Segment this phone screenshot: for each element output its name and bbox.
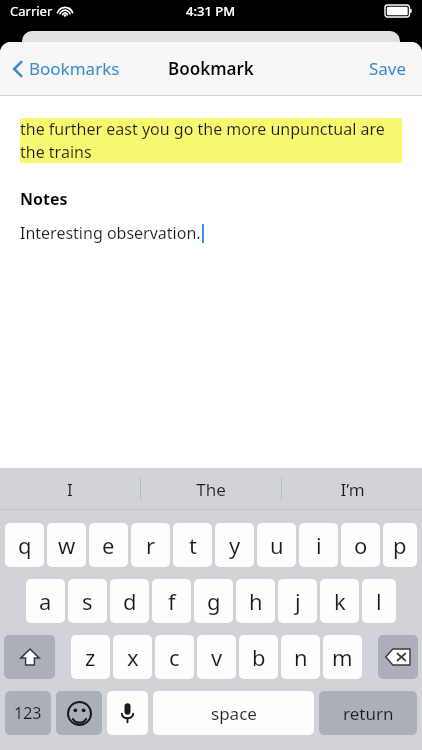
- staticText: s: [82, 586, 93, 616]
- button[interactable]: Emoji: [56, 691, 102, 735]
- button[interactable]: q: [5, 523, 44, 567]
- staticText: z: [85, 642, 96, 672]
- button[interactable]: n: [281, 635, 320, 679]
- staticText: space: [211, 702, 257, 725]
- button[interactable]: The: [141, 468, 281, 510]
- staticText: u: [270, 530, 284, 560]
- button[interactable]: g: [194, 579, 233, 623]
- button[interactable]: l: [362, 579, 396, 623]
- staticText: i: [316, 530, 322, 560]
- button[interactable]: k: [320, 579, 359, 623]
- staticText: I: [67, 478, 73, 501]
- button[interactable]: Backspace: [378, 635, 418, 679]
- staticText: 123: [14, 702, 42, 724]
- button[interactable]: Bookmarks: [8, 51, 124, 86]
- staticText: t: [189, 530, 197, 560]
- button[interactable]: v: [197, 635, 236, 679]
- staticText: d: [123, 586, 137, 616]
- staticText: e: [102, 530, 115, 560]
- button[interactable]: Save: [364, 51, 412, 86]
- button[interactable]: h: [236, 579, 275, 623]
- button[interactable]: o: [341, 523, 380, 567]
- button[interactable]: j: [278, 579, 317, 623]
- staticText: Bookmarks: [29, 57, 120, 80]
- staticText: q: [18, 530, 32, 560]
- button[interactable]: t: [173, 523, 212, 567]
- staticText: Save: [369, 57, 407, 80]
- staticText: f: [168, 586, 176, 616]
- button[interactable]: Dictate: [107, 691, 148, 735]
- button[interactable]: c: [155, 635, 194, 679]
- button[interactable]: w: [47, 523, 86, 567]
- staticText: a: [39, 586, 52, 616]
- staticText: return: [343, 702, 394, 725]
- button[interactable]: u: [257, 523, 296, 567]
- button[interactable]: d: [110, 579, 149, 623]
- button[interactable]: space: [153, 691, 314, 735]
- staticText: x: [127, 642, 139, 672]
- staticText: Interesting observation.: [20, 222, 201, 244]
- staticText: g: [207, 586, 221, 616]
- button[interactable]: 123: [5, 691, 51, 735]
- button[interactable]: I: [0, 468, 140, 510]
- button[interactable]: r: [131, 523, 170, 567]
- staticText: p: [393, 530, 407, 560]
- staticText: h: [249, 586, 263, 616]
- staticText: 4:31 PM: [186, 2, 236, 20]
- staticText: the further east you go the more unpunct…: [20, 118, 402, 163]
- staticText: o: [354, 530, 368, 560]
- staticText: I’m: [340, 478, 365, 501]
- staticText: y: [229, 530, 241, 560]
- staticText: Bookmark: [168, 57, 254, 80]
- button[interactable]: f: [152, 579, 191, 623]
- staticText: b: [252, 642, 266, 672]
- staticText: w: [58, 530, 76, 560]
- staticText: Notes: [20, 188, 68, 210]
- button[interactable]: x: [113, 635, 152, 679]
- button[interactable]: m: [323, 635, 362, 679]
- button[interactable]: e: [89, 523, 128, 567]
- staticText: c: [169, 642, 180, 672]
- button[interactable]: Shift: [4, 635, 55, 679]
- button[interactable]: a: [26, 579, 65, 623]
- button[interactable]: i: [299, 523, 338, 567]
- button[interactable]: I’m: [282, 468, 422, 510]
- button[interactable]: y: [215, 523, 254, 567]
- staticText: The: [196, 478, 226, 501]
- button[interactable]: b: [239, 635, 278, 679]
- staticText: j: [295, 586, 301, 616]
- button[interactable]: p: [383, 523, 417, 567]
- staticText: m: [332, 642, 353, 672]
- staticText: Carrier: [10, 2, 53, 20]
- staticText: v: [211, 642, 223, 672]
- staticText: n: [294, 642, 308, 672]
- staticText: l: [376, 586, 382, 616]
- button[interactable]: return: [319, 691, 417, 735]
- button[interactable]: s: [68, 579, 107, 623]
- staticText: r: [146, 530, 156, 560]
- staticText: k: [334, 586, 346, 616]
- button[interactable]: z: [71, 635, 110, 679]
